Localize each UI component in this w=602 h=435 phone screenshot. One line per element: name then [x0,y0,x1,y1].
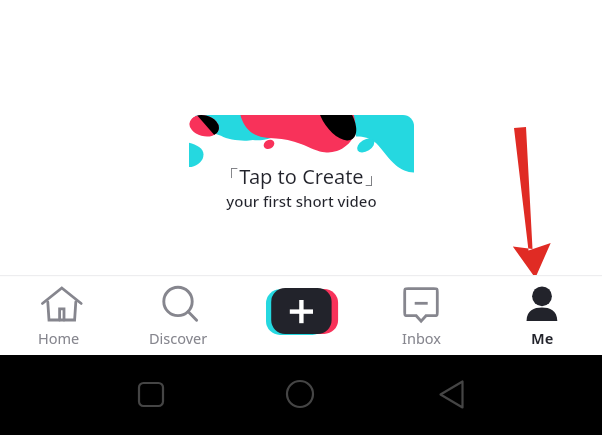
staticText: Home [38,328,80,348]
button[interactable]: Inbox [393,281,449,333]
staticText: Me [531,328,554,348]
staticText: Discover [149,328,208,348]
staticText: Inbox [402,328,441,348]
staticText: your first short video [226,191,377,211]
button[interactable]: Recents [129,372,173,416]
button[interactable]: Back [429,372,473,416]
staticText: 「Tap to Create」 [219,163,384,190]
button[interactable]: Inbox [381,328,461,350]
button[interactable]: Home [19,328,99,350]
button[interactable]: Create [266,288,338,334]
button[interactable]: Me [514,281,570,333]
button[interactable]: 「Tap to Create」 [189,115,414,230]
button[interactable]: Discover [150,281,206,333]
button[interactable]: Discover [138,328,218,350]
button[interactable]: Me [502,328,582,350]
button[interactable]: Home [31,281,87,333]
button[interactable]: Home [278,372,322,416]
